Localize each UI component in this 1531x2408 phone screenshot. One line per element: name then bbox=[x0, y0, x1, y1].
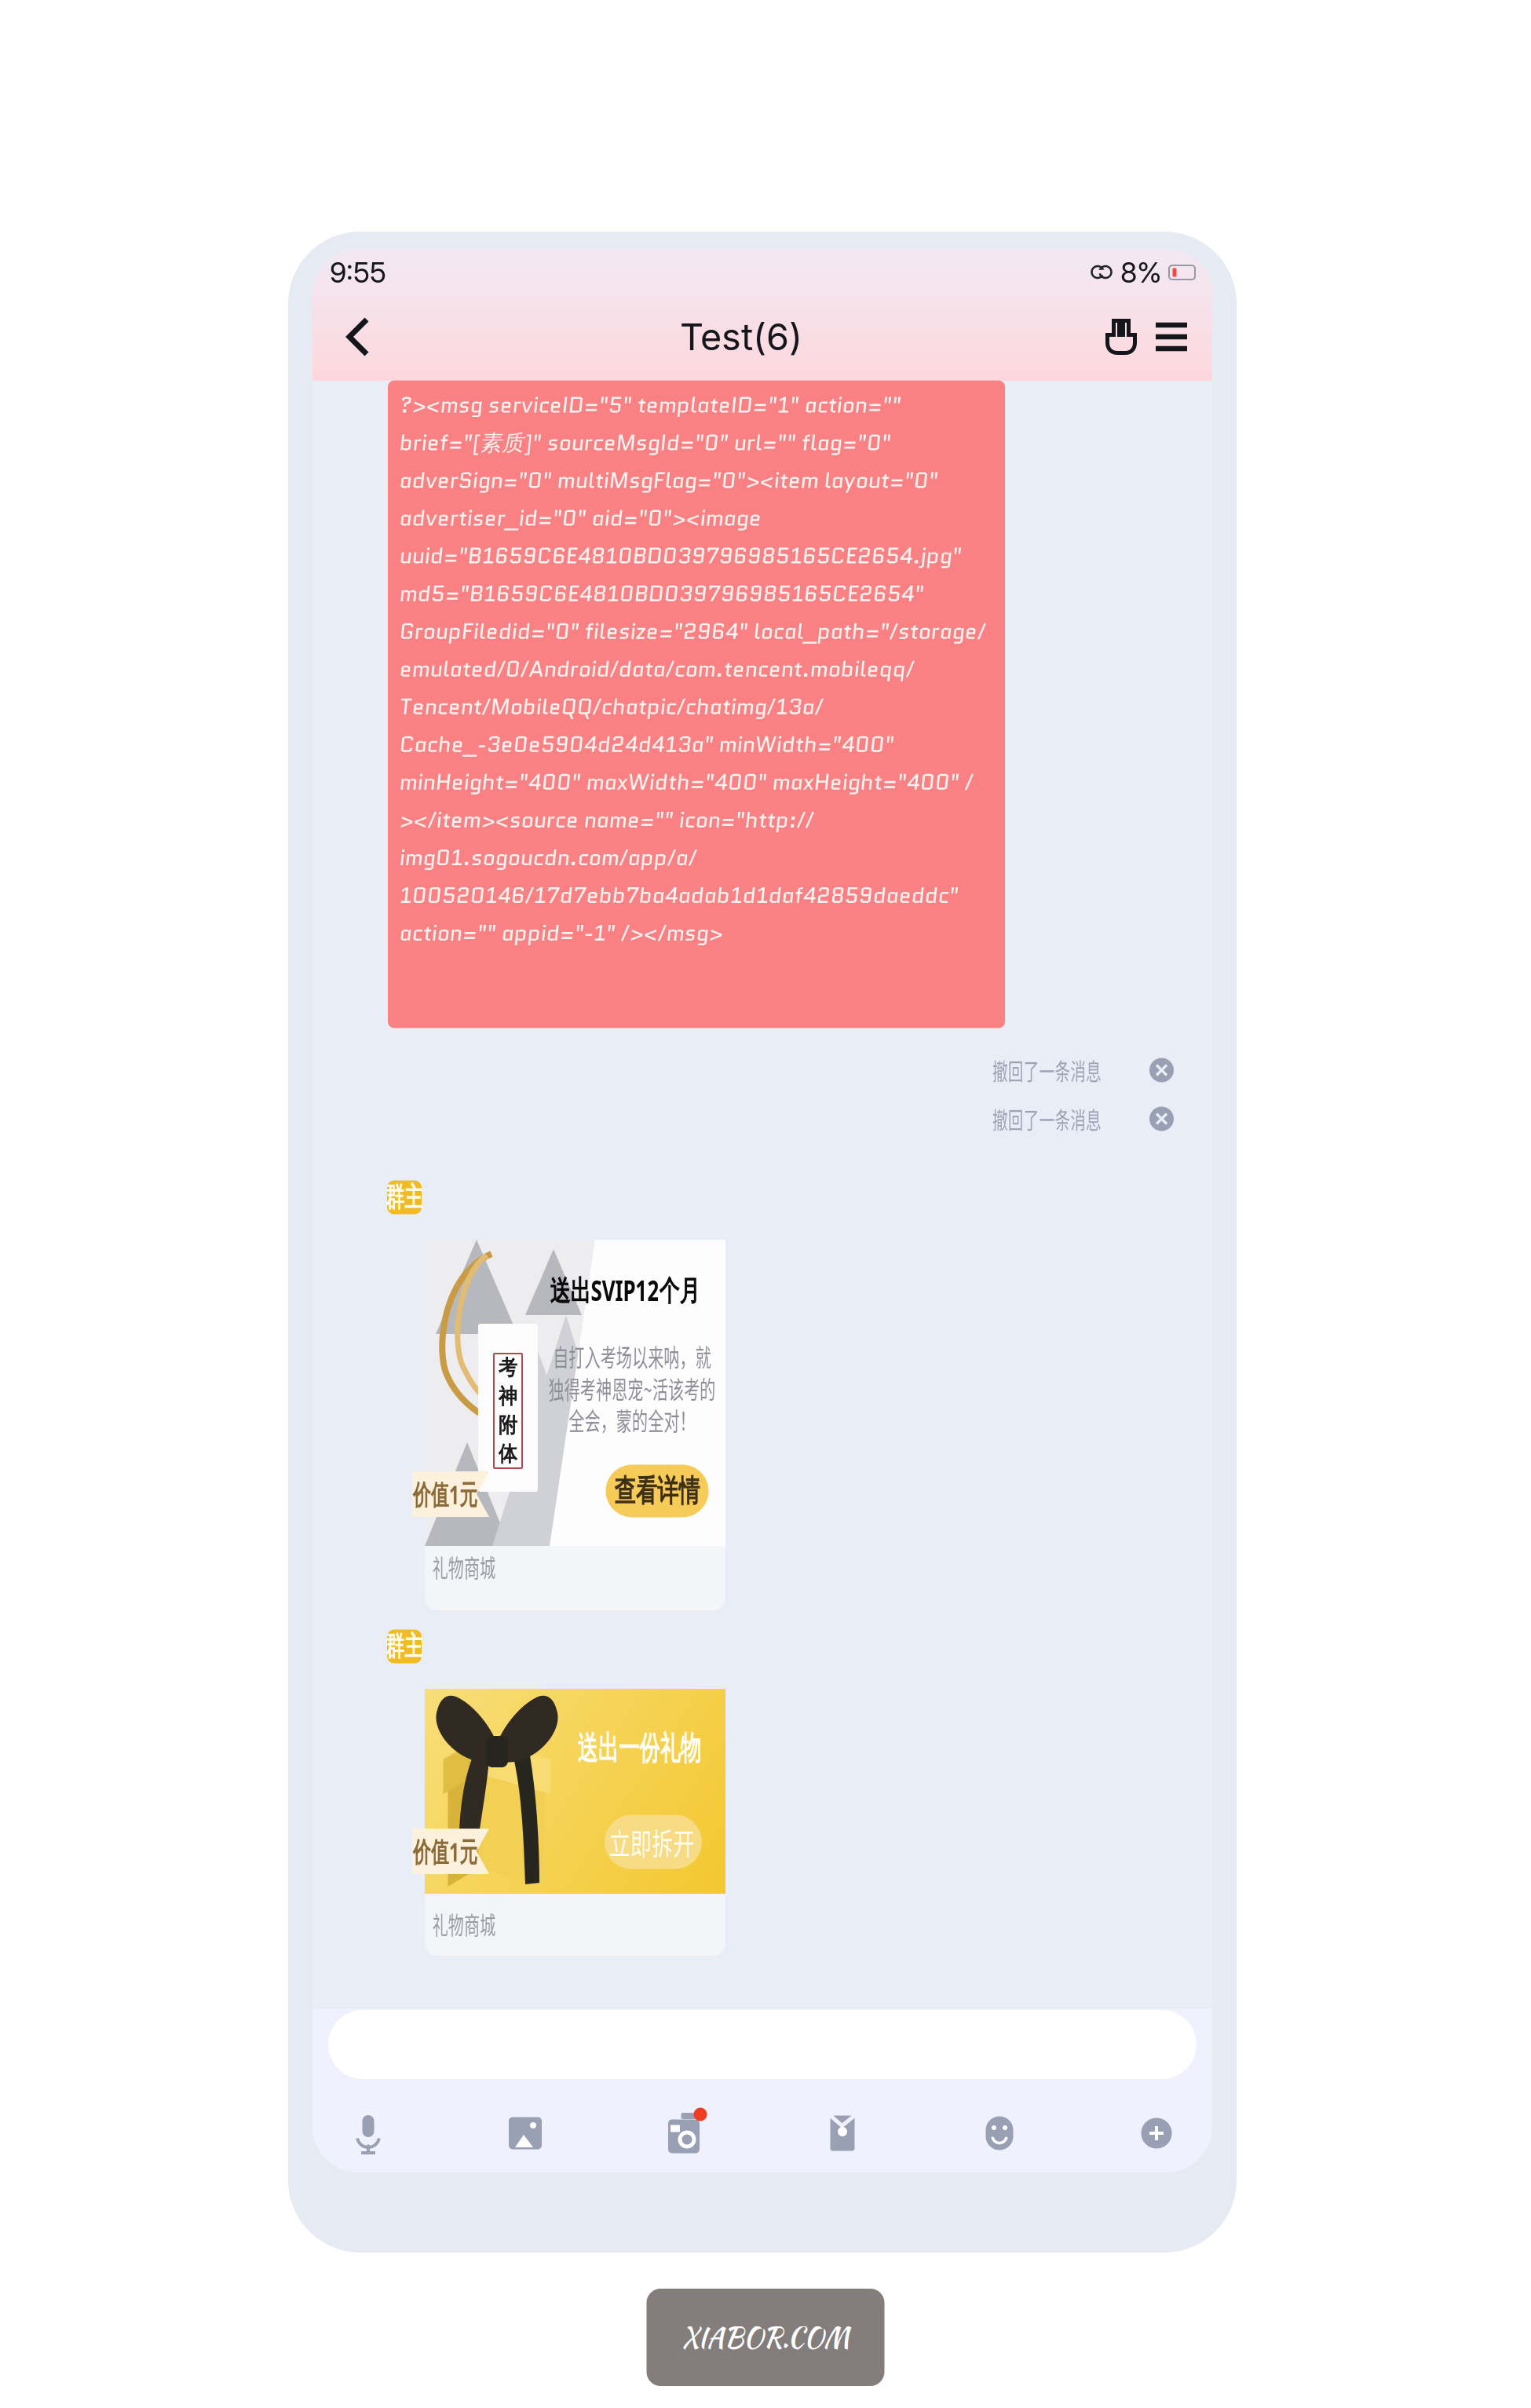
staticText: 撤回了一条消息 bbox=[962, 1101, 1132, 1136]
staticText: 礼物商城 bbox=[414, 1548, 514, 1584]
staticText: XIABOR.COM bbox=[681, 2318, 850, 2357]
button[interactable]: Menu bbox=[1151, 305, 1192, 368]
staticText: 独得考神恩宠~活该考的 bbox=[499, 1370, 765, 1406]
button[interactable]: More bbox=[1137, 2114, 1176, 2153]
staticText: 价值1元 bbox=[396, 1476, 494, 1513]
staticText: 8% bbox=[1120, 255, 1162, 290]
staticText: 送出SVIP12个月 bbox=[521, 1271, 729, 1309]
staticText: 体 bbox=[497, 1441, 519, 1467]
button[interactable]: XIABOR.COM bbox=[647, 2289, 884, 2386]
staticText: 神 bbox=[497, 1383, 519, 1410]
staticText: 9:55 bbox=[330, 255, 386, 290]
staticText: 礼物商城 bbox=[414, 1905, 514, 1942]
staticText: 考 bbox=[497, 1355, 519, 1381]
staticText: 群主 bbox=[377, 1180, 432, 1215]
staticText: 全会，蒙的全对！ bbox=[532, 1401, 733, 1438]
button[interactable]: Voice message bbox=[349, 2110, 388, 2156]
button[interactable]: Camera bbox=[663, 2109, 705, 2158]
staticText: 群主 bbox=[377, 1629, 432, 1664]
button[interactable]: Red packet bbox=[823, 2114, 862, 2153]
staticText: Test(6) bbox=[680, 315, 802, 359]
button[interactable]: Gesture bbox=[1099, 305, 1143, 368]
button[interactable]: Photos bbox=[506, 2114, 545, 2153]
staticText: 查看详情 bbox=[596, 1472, 718, 1510]
button[interactable]: Back bbox=[333, 305, 383, 368]
staticText: 送出一份礼物 bbox=[543, 1728, 736, 1769]
staticText: 自打入考场以来呐，就 bbox=[506, 1338, 758, 1374]
staticText: 撤回了一条消息 bbox=[962, 1053, 1132, 1088]
staticText: ?><msg serviceID="5" templateID="1" acti… bbox=[399, 389, 985, 949]
staticText: 附 bbox=[497, 1412, 519, 1438]
button[interactable]: Emoji bbox=[980, 2114, 1019, 2153]
staticText: 价值1元 bbox=[396, 1833, 494, 1870]
staticText: 立即拆开 bbox=[590, 1820, 713, 1864]
